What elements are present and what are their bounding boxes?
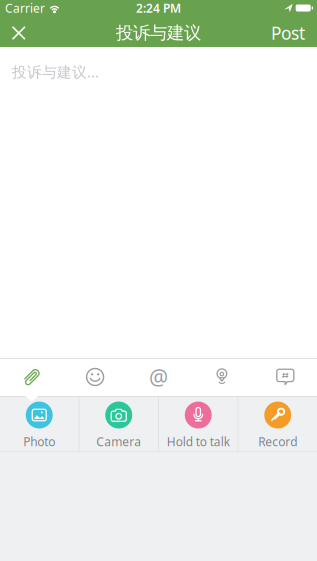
staticText: Camera: [96, 433, 141, 449]
button[interactable]: Record: [238, 396, 317, 451]
staticText: 投诉与建议: [116, 22, 201, 44]
button[interactable]: Mention: [127, 358, 190, 395]
staticText: Carrier: [5, 0, 45, 16]
staticText: Hold to talk: [167, 433, 230, 449]
staticText: Record: [258, 433, 297, 449]
button[interactable]: Attachments: [0, 358, 63, 395]
staticText: @: [149, 363, 168, 391]
button[interactable]: Post: [271, 14, 317, 51]
staticText: Post: [271, 21, 305, 44]
button[interactable]: Topic: [254, 358, 317, 395]
button[interactable]: Hold to talk: [159, 396, 237, 451]
button[interactable]: Location: [190, 358, 254, 395]
staticText: 投诉与建议...: [12, 62, 99, 81]
button[interactable]: Camera: [79, 396, 158, 451]
staticText: Photo: [23, 433, 55, 449]
staticText: 2:24 PM: [136, 0, 181, 16]
button[interactable]: Emoji: [63, 358, 127, 395]
button[interactable]: Close: [0, 19, 24, 47]
button[interactable]: Photo: [0, 396, 78, 451]
